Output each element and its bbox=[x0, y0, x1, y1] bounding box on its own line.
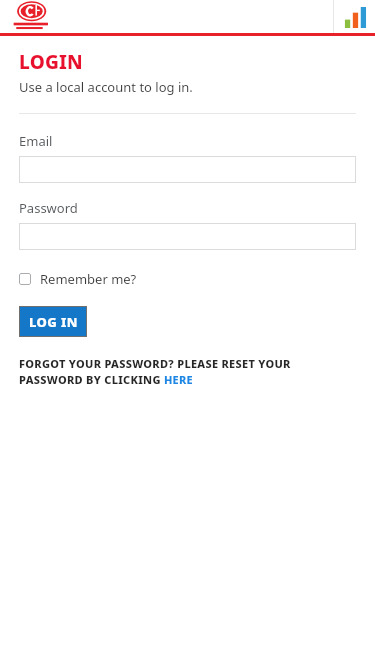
button[interactable]: FORGOT YOUR PASSWORD? PLEASE RESET YOUR … bbox=[19, 356, 356, 388]
staticText: Password bbox=[19, 199, 78, 217]
staticText: LOGIN bbox=[19, 49, 83, 75]
button[interactable]: Remember me? bbox=[19, 270, 137, 288]
button[interactable] bbox=[19, 156, 356, 183]
staticText: Email bbox=[19, 132, 53, 150]
button[interactable]: LOG IN bbox=[19, 306, 87, 337]
button[interactable] bbox=[19, 223, 356, 250]
button[interactable]: Statistics bbox=[343, 7, 367, 28]
staticText: Remember me? bbox=[40, 270, 137, 288]
staticText: Use a local account to log in. bbox=[19, 78, 193, 96]
button[interactable]: Chowking logo bbox=[11, 1, 55, 32]
staticText: LOG IN bbox=[29, 313, 78, 331]
